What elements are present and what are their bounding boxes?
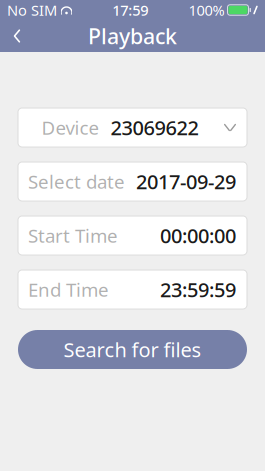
button[interactable]: End Time: [18, 270, 247, 309]
staticText: End Time: [28, 277, 109, 302]
staticText: No SIM: [7, 0, 57, 20]
button[interactable]: Device: [18, 108, 247, 147]
button[interactable]: Search for files: [18, 330, 247, 369]
staticText: 23:59:59: [160, 276, 236, 303]
button[interactable]: Select date: [18, 162, 247, 201]
staticText: 23069622: [110, 114, 198, 141]
staticText: 00:00:00: [160, 222, 236, 249]
staticText: Device: [41, 115, 99, 140]
staticText: 2017-09-29: [136, 168, 236, 195]
staticText: Select date: [28, 169, 125, 194]
button[interactable]: Start Time: [18, 216, 247, 255]
staticText: Search for files: [63, 336, 201, 363]
staticText: Start Time: [28, 223, 118, 248]
button[interactable]: Back: [0, 20, 34, 52]
staticText: 17:59: [112, 0, 148, 20]
staticText: 100%: [188, 0, 224, 20]
staticText: Playback: [88, 22, 177, 50]
